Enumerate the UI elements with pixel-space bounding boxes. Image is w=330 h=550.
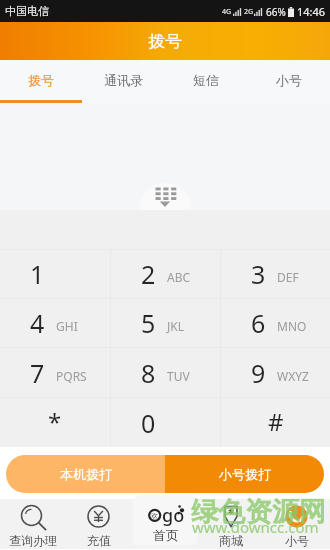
button[interactable]: 小号 (247, 60, 330, 100)
staticText: 小号 (285, 533, 309, 548)
staticText: 2G (244, 7, 254, 17)
staticText: 小号 (276, 72, 302, 88)
staticText: 4G (222, 7, 232, 17)
staticText: 中国电信 (5, 4, 49, 18)
button[interactable]: 查询办理 (0, 499, 66, 549)
button[interactable]: 通讯录 (82, 60, 164, 100)
staticText: 本机拨打 (60, 466, 112, 482)
staticText: TUV (167, 368, 190, 384)
button[interactable]: 1 (0, 250, 110, 298)
staticText: 通讯录 (104, 72, 143, 88)
staticText: # (268, 405, 284, 438)
staticText: 2 (141, 257, 156, 291)
button[interactable]: 8 (111, 348, 220, 397)
staticText: JKL (167, 318, 184, 334)
staticText: 7 (30, 356, 45, 390)
staticText: DEF (277, 269, 299, 285)
button[interactable]: 4 (0, 299, 110, 347)
button[interactable]: 5 (111, 299, 220, 347)
staticText: 拨号 (28, 72, 54, 88)
button[interactable]: # (221, 398, 330, 447)
button[interactable]: 本机拨打 (6, 455, 165, 493)
button[interactable]: 小号 (264, 499, 330, 549)
button[interactable]: 充值 (66, 499, 132, 549)
staticText: 4 (30, 306, 45, 340)
staticText: 查询办理 (9, 533, 57, 548)
staticText: 8 (141, 356, 156, 390)
staticText: MNO (277, 318, 307, 334)
staticText: 9 (251, 356, 266, 390)
staticText: 1 (30, 257, 45, 291)
staticText: www.downcc.com (192, 517, 319, 537)
button[interactable]: 小号拨打 (165, 455, 324, 493)
button[interactable]: 拨号 (0, 60, 82, 100)
staticText: 5 (141, 306, 156, 340)
staticText: 首页 (153, 527, 179, 543)
staticText: 6 (251, 306, 266, 340)
button[interactable]: 9 (221, 348, 330, 397)
button[interactable]: 短信 (164, 60, 247, 100)
staticText: GHI (56, 318, 78, 334)
staticText: 拨号 (148, 31, 182, 52)
staticText: 充值 (87, 533, 111, 548)
button[interactable]: Show dialpad (139, 183, 191, 210)
button[interactable]: 3 (221, 250, 330, 298)
button[interactable]: 0 (111, 398, 220, 447)
staticText: WXYZ (277, 368, 309, 384)
button[interactable]: 商城 (198, 499, 264, 549)
staticText: 0 (141, 406, 156, 440)
button[interactable]: * (0, 398, 110, 447)
button[interactable]: 2 (111, 250, 220, 298)
staticText: 欢 (151, 511, 158, 520)
staticText: 14:46 (297, 4, 326, 19)
staticText: 商城 (219, 533, 243, 548)
staticText: PQRS (56, 368, 87, 384)
staticText: go (162, 503, 185, 528)
staticText: 绿色资源网 (191, 495, 326, 529)
button[interactable]: 6 (221, 299, 330, 347)
staticText: ABC (167, 269, 191, 285)
button[interactable]: go (133, 495, 197, 545)
staticText: * (48, 405, 62, 438)
button[interactable]: 7 (0, 348, 110, 397)
staticText: 3 (251, 257, 266, 291)
staticText: 短信 (193, 72, 219, 88)
staticText: 小号拨打 (219, 466, 271, 482)
staticText: 66% (266, 5, 286, 19)
